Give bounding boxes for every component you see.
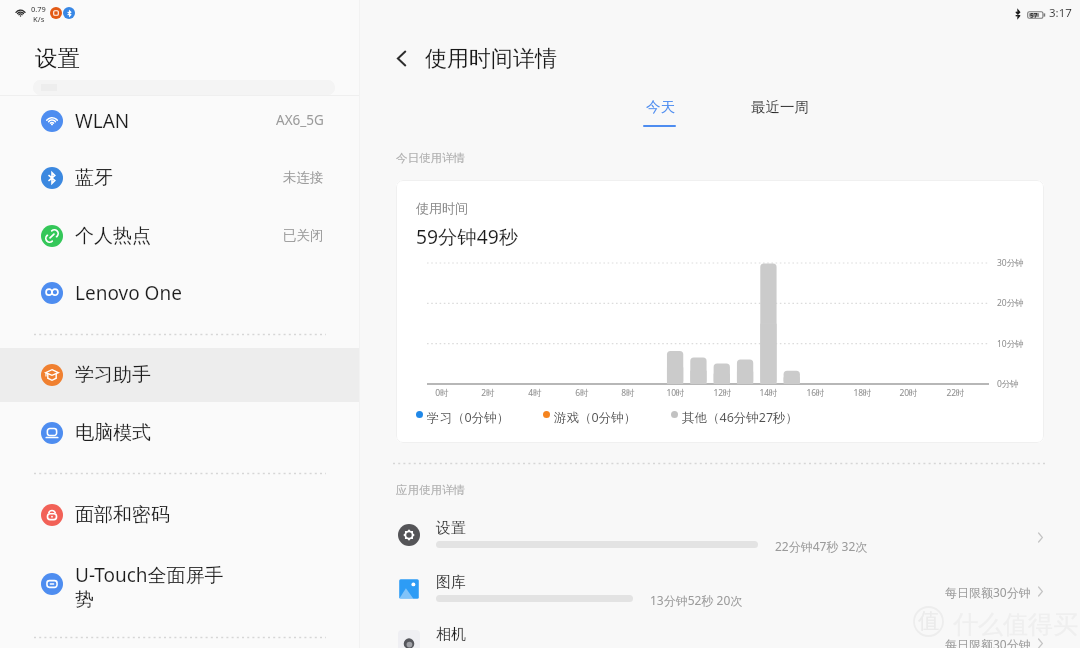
staticText: 什么值得买 xyxy=(953,609,1078,640)
button[interactable]: Back xyxy=(384,42,416,74)
staticText: Lenovo One xyxy=(75,280,182,306)
staticText: 应用使用详情 xyxy=(396,483,465,497)
staticText: AX6_5G xyxy=(276,111,324,129)
staticText: 使用时间 xyxy=(416,200,468,216)
staticText: 个人热点 xyxy=(75,224,151,248)
staticText: 今日使用详情 xyxy=(396,151,465,165)
staticText: 3:17 xyxy=(1049,5,1072,21)
staticText: 使用时间详情 xyxy=(425,45,557,73)
staticText: 势 xyxy=(75,588,94,612)
staticText: 今天 xyxy=(646,98,675,116)
staticText: 13分钟52秒 20次 xyxy=(650,592,743,608)
staticText: K/s xyxy=(33,14,45,24)
staticText: 电脑模式 xyxy=(75,421,151,445)
staticText: 4时 xyxy=(528,387,542,399)
staticText: 18时 xyxy=(853,387,872,399)
staticText: 学习助手 xyxy=(75,363,151,387)
staticText: 相机 xyxy=(436,625,466,644)
staticText: 20时 xyxy=(899,387,918,399)
staticText: 10时 xyxy=(666,387,685,399)
staticText: 8时 xyxy=(621,387,635,399)
staticText: 6时 xyxy=(575,387,589,399)
button[interactable]: WLAN xyxy=(0,93,360,149)
staticText: 已关闭 xyxy=(283,227,324,244)
button[interactable]: 个人热点 xyxy=(0,208,360,264)
staticText: 10分钟 xyxy=(997,338,1024,350)
staticText: 20分钟 xyxy=(997,297,1024,309)
button[interactable]: 图库 xyxy=(360,564,1080,614)
staticText: 面部和密码 xyxy=(75,503,170,527)
staticText: 游戏（0分钟） xyxy=(554,409,637,426)
staticText: 30分钟 xyxy=(997,257,1024,269)
staticText: 设置 xyxy=(35,44,80,72)
button[interactable]: 相机 xyxy=(360,616,1080,648)
staticText: 其他（46分钟27秒） xyxy=(682,409,799,426)
staticText: WLAN xyxy=(75,108,130,134)
staticText: 学习（0分钟） xyxy=(427,409,510,426)
button[interactable]: 设置 xyxy=(360,510,1080,560)
button[interactable]: 蓝牙 xyxy=(0,150,360,206)
staticText: 未连接 xyxy=(283,169,324,186)
staticText: 16时 xyxy=(806,387,825,399)
staticText: 59分钟49秒 xyxy=(416,223,519,249)
staticText: 图库 xyxy=(436,573,466,592)
staticText: 蓝牙 xyxy=(75,166,113,190)
staticText: 0.79 xyxy=(31,4,46,14)
button[interactable]: 面部和密码 xyxy=(0,487,360,543)
staticText: 14时 xyxy=(759,387,778,399)
staticText: 设置 xyxy=(436,519,466,538)
staticText: 0分钟 xyxy=(997,378,1019,390)
staticText: 值 xyxy=(918,608,939,634)
staticText: U-Touch全面屏手 xyxy=(75,562,224,588)
staticText: 12时 xyxy=(713,387,732,399)
staticText: 22时 xyxy=(946,387,965,399)
button[interactable]: 学习助手 xyxy=(0,347,360,403)
button[interactable]: 今天 xyxy=(628,88,692,126)
staticText: 每日限额30分钟 xyxy=(945,584,1031,600)
button[interactable]: 最近一周 xyxy=(734,88,826,126)
button[interactable]: 电脑模式 xyxy=(0,405,360,461)
staticText: 每日限额30分钟 xyxy=(945,636,1031,648)
staticText: 最近一周 xyxy=(751,98,809,116)
staticText: 22分钟47秒 32次 xyxy=(775,538,868,554)
button[interactable]: U-Touch全面屏手 xyxy=(0,550,360,618)
staticText: 57 xyxy=(1030,11,1038,19)
staticText: 0时 xyxy=(435,387,449,399)
button[interactable]: Lenovo One xyxy=(0,265,360,321)
staticText: 2时 xyxy=(481,387,495,399)
